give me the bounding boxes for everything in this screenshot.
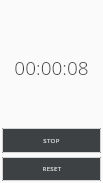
button[interactable]: RESET — [2, 157, 101, 181]
staticText: STOP — [43, 137, 60, 145]
button[interactable]: STOP — [2, 128, 101, 153]
staticText: 00:00:08 — [14, 55, 89, 81]
staticText: RESET — [42, 165, 62, 173]
